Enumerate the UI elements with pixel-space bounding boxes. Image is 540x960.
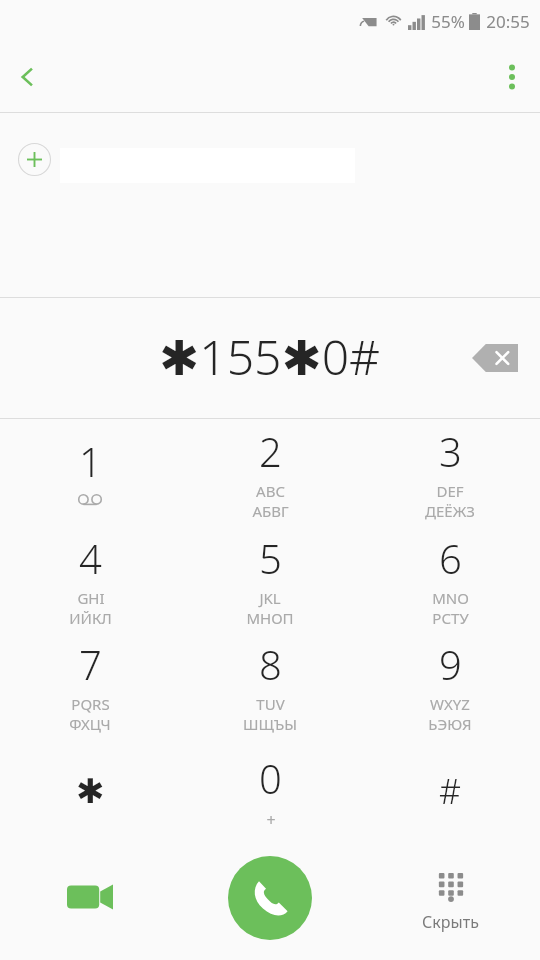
button[interactable]: 6 (360, 526, 540, 632)
button[interactable]: 0 (180, 738, 360, 844)
button[interactable]: 3 (360, 419, 540, 526)
button[interactable]: Call (228, 856, 312, 940)
staticText: 55% (431, 10, 465, 33)
button[interactable]: More options (484, 49, 540, 105)
staticText: ФХЦЧ (69, 714, 111, 734)
staticText: ШЩЪЫ (243, 714, 297, 734)
button[interactable]: 2 (180, 419, 360, 526)
staticText: ABC (256, 481, 285, 501)
staticText: 7 (79, 637, 102, 691)
staticText: WXYZ (430, 694, 470, 714)
staticText: ✱155✱0# (159, 324, 381, 389)
button[interactable]: ✱ (0, 738, 180, 844)
staticText: МНОП (246, 608, 294, 628)
staticText: + (266, 809, 276, 831)
staticText: 9 (439, 637, 462, 691)
staticText: 4 (79, 531, 102, 585)
button[interactable]: Скрыть (360, 844, 540, 960)
button[interactable]: Video call (0, 844, 180, 960)
staticText: 6 (439, 531, 462, 585)
staticText: Скрыть (422, 911, 479, 933)
button[interactable]: 8 (180, 632, 360, 738)
button[interactable]: Back (0, 49, 56, 105)
staticText: 5 (259, 531, 282, 585)
button[interactable]: Backspace (464, 332, 526, 384)
button[interactable]: # (360, 738, 540, 844)
staticText: DEF (436, 481, 464, 501)
staticText: 1 (79, 434, 102, 488)
staticText: JKL (259, 588, 281, 608)
staticText: 3 (439, 424, 462, 478)
staticText: MNO (432, 588, 469, 608)
button[interactable]: 4 (0, 526, 180, 632)
staticText: TUV (256, 694, 285, 714)
button[interactable]: 7 (0, 632, 180, 738)
staticText: # (439, 768, 461, 814)
button[interactable]: 5 (180, 526, 360, 632)
staticText: ✱ (76, 771, 105, 811)
button[interactable]: Add contact (18, 143, 51, 176)
staticText: PQRS (71, 694, 110, 714)
staticText: ДЕЁЖЗ (425, 501, 475, 521)
staticText: АБВГ (252, 501, 289, 521)
staticText: ИЙКЛ (69, 608, 112, 628)
staticText: 8 (259, 637, 282, 691)
button[interactable]: 9 (360, 632, 540, 738)
staticText: 2 (259, 424, 282, 478)
staticText: GHI (77, 588, 105, 608)
staticText: РСТУ (432, 608, 469, 628)
staticText: ЬЭЮЯ (428, 714, 472, 734)
staticText: 0 (259, 751, 282, 805)
staticText: 20:55 (486, 10, 530, 33)
button[interactable]: 1 (0, 419, 180, 526)
